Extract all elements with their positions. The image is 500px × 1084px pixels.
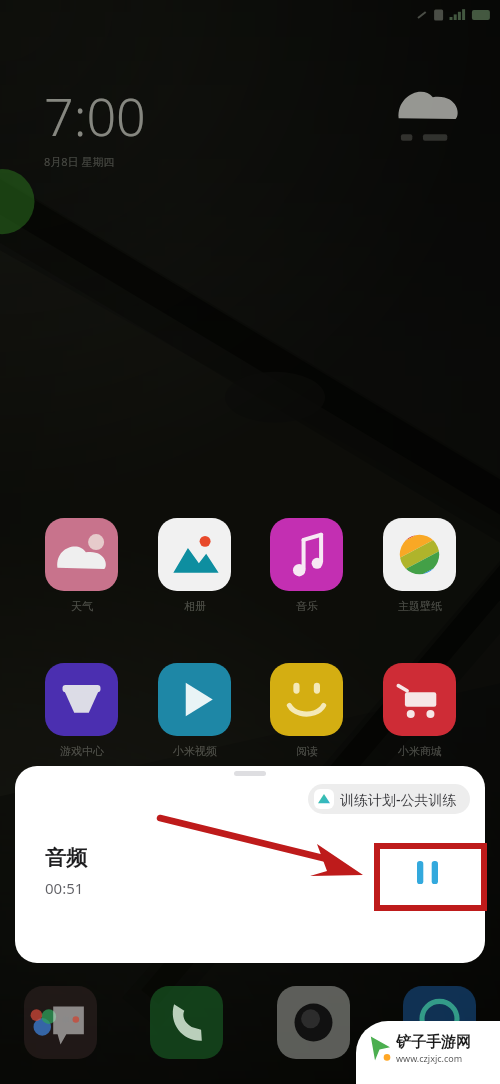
button[interactable]: 相册 (158, 518, 231, 613)
staticText: 7:00 (44, 80, 146, 151)
staticText: 8月8日 星期四 (44, 154, 115, 169)
staticText: 小米商城 (398, 744, 442, 758)
staticText: www.czjxjc.com (396, 1052, 463, 1064)
button[interactable]: 阅读 (270, 663, 343, 758)
staticText: 00:51 (45, 878, 84, 898)
staticText: 小米视频 (173, 744, 217, 758)
button[interactable]: Phone (150, 986, 223, 1059)
button[interactable]: Pause (398, 843, 456, 901)
staticText: 游戏中心 (60, 744, 104, 758)
button[interactable]: 游戏中心 (45, 663, 118, 758)
button[interactable]: 天气 (45, 518, 118, 613)
staticText: 天气 (71, 599, 93, 613)
button[interactable]: 训练计划-公共训练 (308, 784, 470, 814)
staticText: 主题壁纸 (398, 599, 442, 613)
button[interactable]: Camera (277, 986, 350, 1059)
button[interactable]: 主题壁纸 (383, 518, 456, 613)
button[interactable]: 训练计划-公共训练 (15, 766, 485, 963)
staticText: 相册 (184, 599, 206, 613)
staticText: 阅读 (296, 744, 318, 758)
staticText: 训练计划-公共训练 (340, 790, 457, 809)
staticText: 铲子手游网 (396, 1033, 471, 1052)
button[interactable]: 小米视频 (158, 663, 231, 758)
button[interactable]: Browser (403, 986, 476, 1059)
button[interactable]: 音乐 (270, 518, 343, 613)
button[interactable]: 小米商城 (383, 663, 456, 758)
staticText: 音频 (45, 845, 87, 871)
staticText: 音乐 (296, 599, 318, 613)
button[interactable]: Messages (24, 986, 97, 1059)
